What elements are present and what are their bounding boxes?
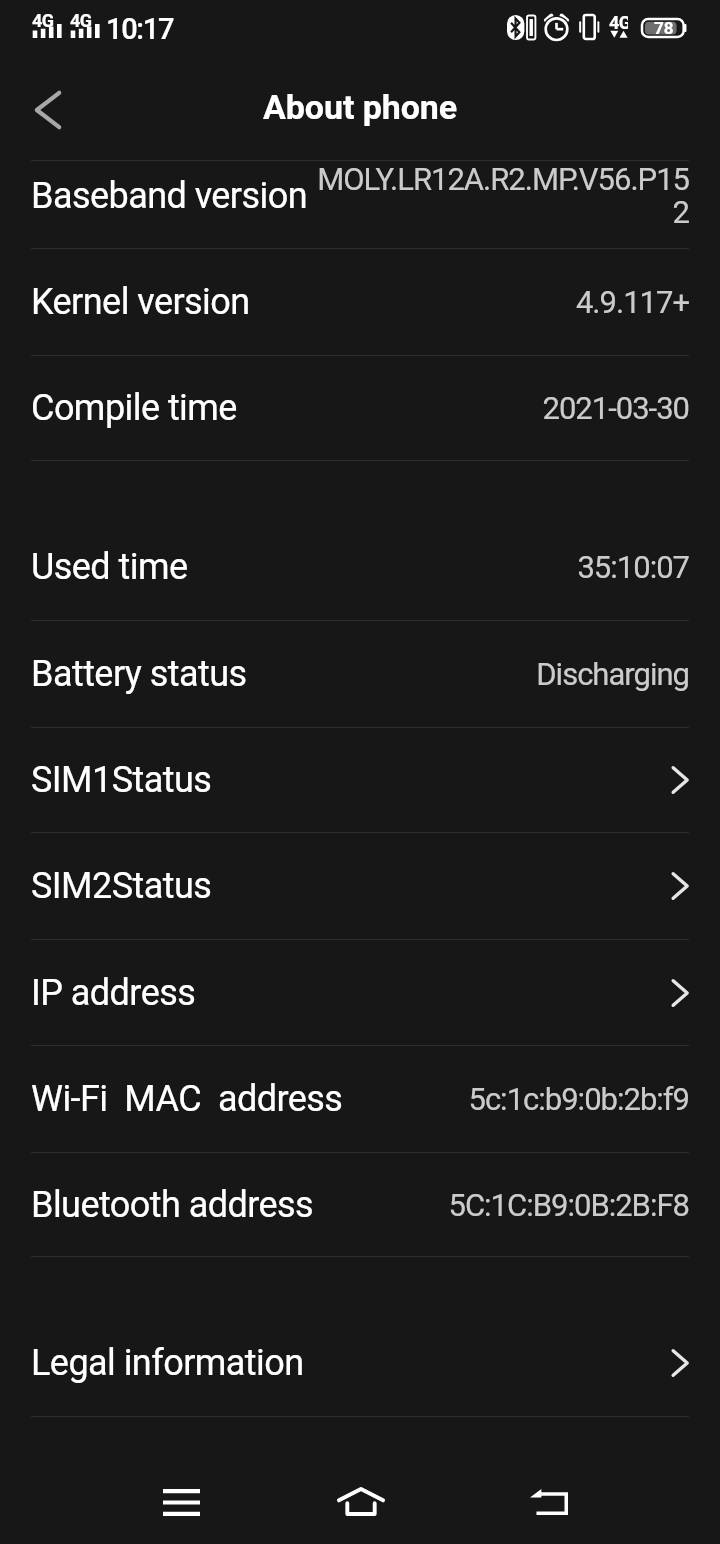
button[interactable]: Battery status <box>0 621 720 727</box>
staticText: MOLY.LR12A.R2.MP.V56.P152 <box>316 161 689 231</box>
button[interactable]: Wi-Fi MAC address <box>0 1046 720 1152</box>
staticText: Compile time <box>31 387 237 429</box>
staticText: Discharging <box>536 656 689 692</box>
staticText: SIM2Status <box>31 865 212 907</box>
staticText: 5C:1C:B9:0B:2B:F8 <box>448 1187 689 1223</box>
button[interactable]: Used time <box>0 514 720 620</box>
button[interactable]: Navigate up <box>6 68 90 152</box>
button[interactable]: Back <box>499 1451 599 1544</box>
staticText: SIM1Status <box>31 759 212 801</box>
button[interactable]: SIM1Status <box>0 728 720 832</box>
button[interactable]: Recent apps <box>131 1452 231 1544</box>
staticText: 78 <box>654 18 674 36</box>
staticText: Bluetooth address <box>31 1184 314 1226</box>
staticText: Wi-Fi MAC address <box>31 1078 343 1120</box>
staticText: 4G <box>32 10 62 31</box>
staticText: 10:17 <box>106 12 174 46</box>
button[interactable]: Legal information <box>0 1310 720 1416</box>
staticText: 4G <box>609 12 628 33</box>
staticText: 2021-03-30 <box>542 390 689 426</box>
staticText: Used time <box>31 546 188 588</box>
button[interactable]: Home <box>311 1451 411 1544</box>
button[interactable]: Kernel version <box>0 249 720 355</box>
staticText: 5c:1c:b9:0b:2b:f9 <box>468 1081 689 1117</box>
button[interactable]: Baseband version <box>0 161 720 239</box>
staticText: Legal information <box>31 1342 304 1384</box>
staticText: 4G <box>70 10 100 31</box>
staticText: 35:10:07 <box>577 549 689 585</box>
button[interactable]: SIM2Status <box>0 833 720 939</box>
staticText: IP address <box>31 972 196 1014</box>
staticText: Baseband version <box>31 175 308 217</box>
staticText: About phone <box>263 87 457 127</box>
button[interactable]: IP address <box>0 940 720 1045</box>
button[interactable]: Bluetooth address <box>0 1153 720 1256</box>
button[interactable]: Compile time <box>0 356 720 460</box>
staticText: Battery status <box>31 653 247 695</box>
staticText: 4.9.117+ <box>575 284 689 320</box>
staticText: Kernel version <box>31 281 250 323</box>
